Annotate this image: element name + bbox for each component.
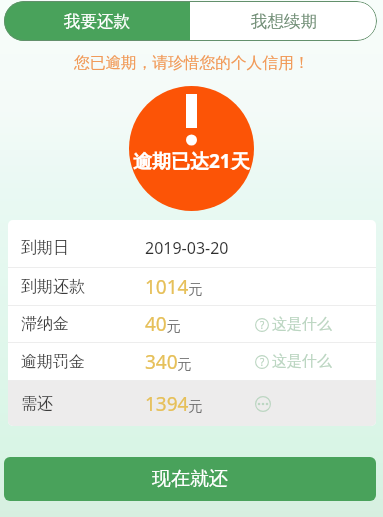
button[interactable]: 滞纳金 [8, 306, 376, 342]
button[interactable]: 逾期罚金 [8, 343, 376, 380]
staticText: 到期还款 [21, 277, 85, 297]
button[interactable]: 我要还款 [4, 1, 190, 41]
staticText: 2019-03-20 [145, 237, 229, 259]
staticText: 您已逾期，请珍惜您的个人信用！ [74, 53, 310, 73]
button[interactable]: 需还 [8, 381, 376, 426]
staticText: 这是什么 [272, 352, 332, 371]
button[interactable]: ? [255, 315, 332, 334]
staticText: 这是什么 [272, 315, 332, 334]
button[interactable]: ? [255, 352, 332, 371]
staticText: 需还 [21, 394, 53, 414]
button[interactable]: 到期日 [8, 229, 376, 267]
button[interactable]: 到期还款 [8, 268, 376, 305]
staticText: 现在就还 [152, 467, 228, 491]
staticText: 340元 [145, 349, 192, 375]
staticText: 我想续期 [251, 11, 317, 32]
button[interactable]: 现在就还 [4, 457, 376, 501]
staticText: 逾期罚金 [21, 352, 85, 372]
staticText: 滞纳金 [21, 314, 69, 334]
staticText: ? [260, 318, 265, 332]
staticText: 40元 [145, 311, 181, 337]
staticText: 逾期已达21天 [133, 148, 250, 174]
button[interactable]: 我想续期 [190, 1, 377, 41]
staticText: ? [260, 355, 265, 369]
staticText: 到期日 [21, 238, 69, 258]
staticText: 我要还款 [64, 11, 130, 32]
staticText: 1014元 [145, 274, 203, 300]
staticText: 1394元 [145, 391, 203, 417]
button[interactable]: More details [255, 396, 271, 412]
